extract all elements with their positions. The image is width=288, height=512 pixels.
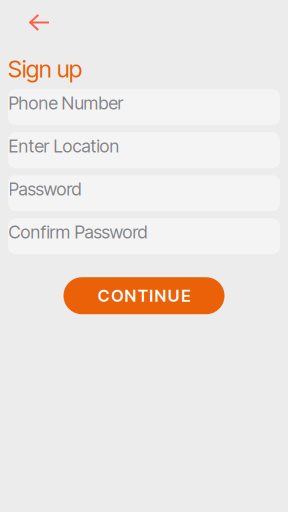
staticText: Phone Number (8, 92, 123, 114)
button[interactable]: Back (0, 0, 64, 41)
staticText: Enter Location (8, 135, 119, 157)
button[interactable]: Enter Location (8, 132, 280, 168)
staticText: Sign up (8, 55, 82, 83)
button[interactable]: CONTINUE (63, 277, 224, 314)
button[interactable]: Confirm Password (8, 218, 280, 254)
button[interactable]: Phone Number (8, 89, 280, 125)
staticText: Password (8, 178, 81, 200)
staticText: CONTINUE (98, 286, 190, 306)
button[interactable]: Password (8, 175, 280, 211)
staticText: Confirm Password (8, 221, 147, 243)
